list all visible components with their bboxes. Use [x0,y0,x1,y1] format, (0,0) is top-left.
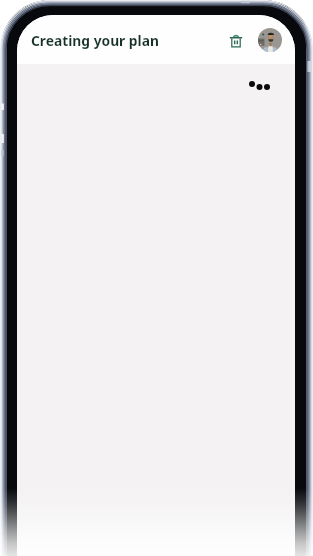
button[interactable]: Delete [225,29,247,51]
staticText: Creating your plan [31,31,159,50]
button[interactable]: Profile [258,28,282,52]
